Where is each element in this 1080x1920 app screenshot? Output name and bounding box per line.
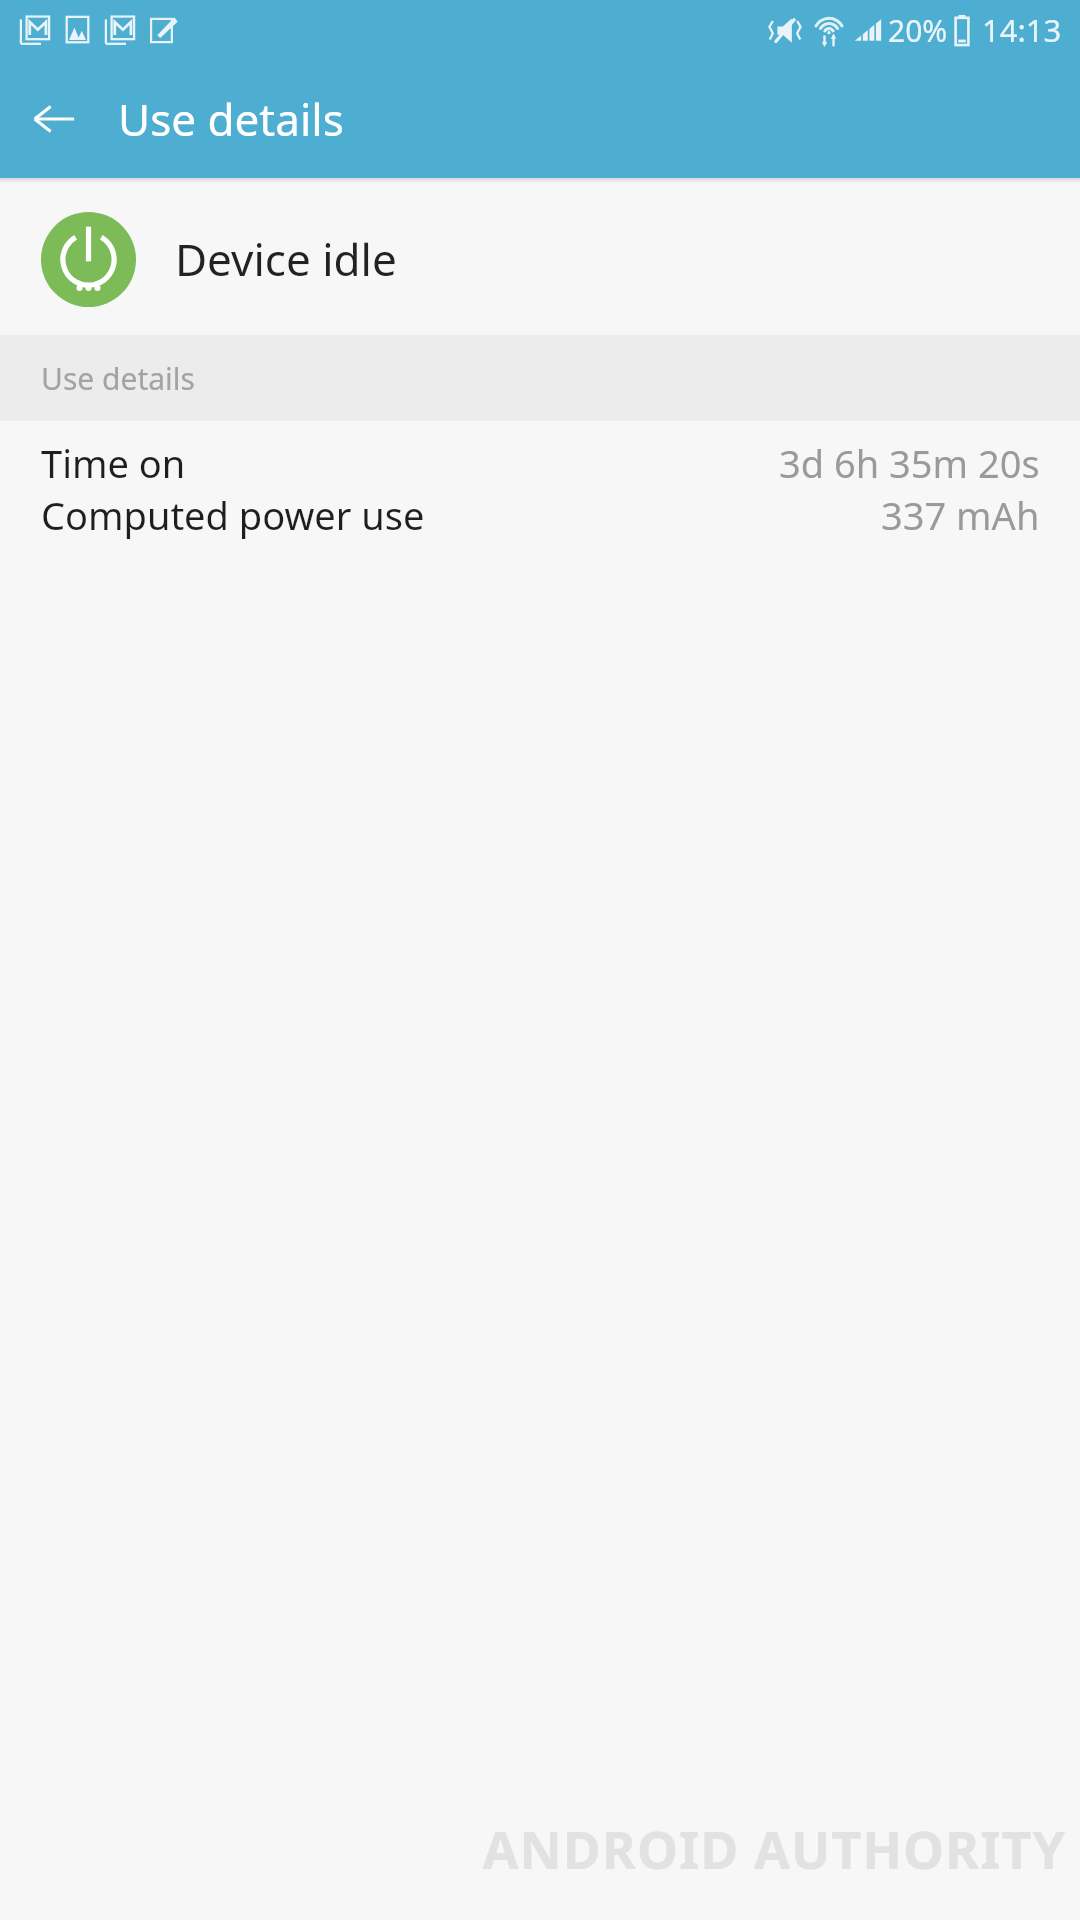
button[interactable]: Computed power use [0,489,1080,541]
staticText: Time on [41,437,186,489]
staticText: Device idle [175,229,397,289]
button[interactable]: Back [18,83,90,155]
staticText: Use details [41,358,195,399]
staticText: Use details [118,89,344,149]
button[interactable]: Time on [0,437,1080,489]
staticText: 20% [888,10,948,51]
button[interactable]: Device idle [0,183,1080,335]
staticText: 3d 6h 35m 20s [779,437,1040,489]
staticText: Computed power use [41,489,425,541]
staticText: ANDROID AUTHORITY [482,1813,1066,1884]
staticText: 337 mAh [881,489,1040,541]
staticText: 14:13 [982,9,1062,51]
